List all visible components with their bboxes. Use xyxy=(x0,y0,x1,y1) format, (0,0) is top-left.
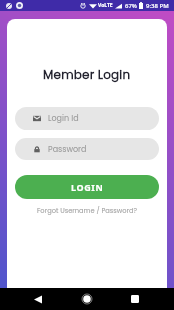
button[interactable]: Forgot Username / Password? xyxy=(35,204,140,217)
staticText: LOGIN xyxy=(71,181,104,193)
button[interactable]: Recent apps xyxy=(118,288,151,310)
staticText: Password xyxy=(48,144,87,155)
button[interactable]: Home xyxy=(70,288,103,310)
staticText: VoLTE xyxy=(98,2,113,9)
button[interactable]: Login Id xyxy=(15,107,159,130)
button[interactable]: LOGIN xyxy=(15,175,159,199)
staticText: 67% xyxy=(125,2,137,10)
staticText: 9:38 PM xyxy=(146,2,169,10)
staticText: Member Login xyxy=(43,66,131,83)
button[interactable]: Back xyxy=(21,288,54,310)
staticText: Login Id xyxy=(48,113,79,124)
button[interactable]: Password xyxy=(15,138,159,160)
staticText: Forgot Username / Password? xyxy=(37,206,138,215)
